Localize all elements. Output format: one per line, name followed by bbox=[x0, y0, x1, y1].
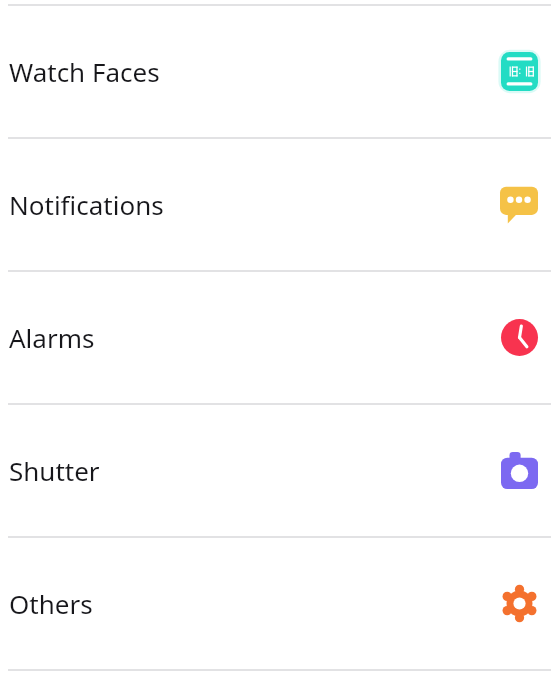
button[interactable]: Notifications bbox=[0, 139, 559, 270]
button[interactable]: Shutter bbox=[0, 405, 559, 536]
staticText: Others bbox=[9, 586, 93, 621]
staticText: Shutter bbox=[9, 453, 100, 488]
staticText: Alarms bbox=[9, 320, 95, 355]
staticText: Notifications bbox=[9, 187, 164, 222]
button[interactable]: Alarms bbox=[0, 272, 559, 403]
button[interactable]: Watch Faces bbox=[0, 6, 559, 137]
staticText: Watch Faces bbox=[9, 54, 160, 89]
button[interactable]: Others bbox=[0, 538, 559, 669]
